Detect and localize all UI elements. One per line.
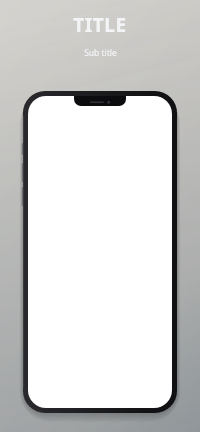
button[interactable]: Phone preview [23, 91, 177, 413]
staticText: Sub title [84, 47, 117, 59]
staticText: TITLE [73, 12, 127, 38]
